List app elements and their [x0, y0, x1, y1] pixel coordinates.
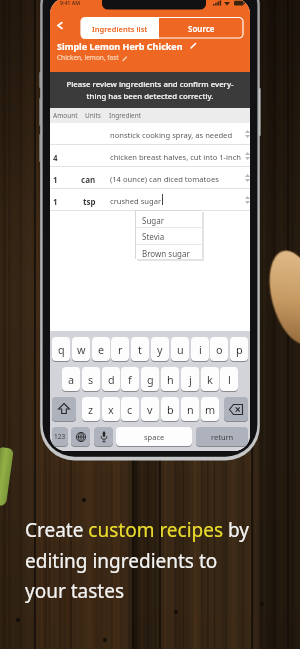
button[interactable]: c	[121, 397, 139, 421]
staticText: crushed sugar	[110, 196, 242, 206]
button[interactable]: g	[141, 367, 159, 391]
button[interactable]: q	[52, 337, 70, 361]
staticText: q	[58, 342, 65, 357]
button[interactable]: nonstick cooking spray, as needed	[50, 123, 250, 145]
staticText: o	[216, 342, 223, 357]
staticText: a	[68, 372, 75, 387]
staticText: Amount	[53, 111, 78, 120]
staticText: g	[147, 372, 154, 387]
staticText: Chicken, lemon, fast	[57, 53, 119, 62]
staticText: v	[147, 402, 153, 417]
staticText: e	[98, 342, 105, 357]
button[interactable]	[94, 427, 113, 446]
staticText: (14 ounce) can diced tomatoes	[110, 174, 242, 184]
button[interactable]: f	[121, 367, 139, 391]
staticText: f	[128, 372, 132, 387]
staticText: 123	[54, 432, 66, 441]
button[interactable]: x	[102, 397, 120, 421]
button[interactable]: r	[111, 337, 129, 361]
button[interactable]: v	[141, 397, 159, 421]
staticText: j	[189, 372, 192, 387]
staticText: 1	[53, 174, 58, 185]
button[interactable]	[52, 397, 76, 421]
staticText: can	[81, 174, 96, 185]
button[interactable]: s	[82, 367, 100, 391]
staticText: r	[118, 342, 123, 357]
staticText: z	[88, 402, 94, 417]
button[interactable]: Brown sugar	[142, 248, 190, 259]
button[interactable]: b	[161, 397, 179, 421]
button[interactable]: Ingredients list	[81, 18, 159, 39]
staticText: l	[228, 372, 231, 387]
button[interactable]: Stevia	[142, 231, 165, 242]
staticText: s	[88, 372, 94, 387]
button[interactable]: a	[62, 367, 80, 391]
button[interactable]: l	[220, 367, 238, 391]
staticText: k	[207, 372, 213, 387]
button[interactable]: Source	[159, 18, 243, 39]
staticText: nonstick cooking spray, as needed	[110, 130, 242, 140]
staticText: Create custom recipes by editing ingredi…	[25, 517, 250, 603]
button[interactable]: i	[191, 337, 209, 361]
button[interactable]: o	[210, 337, 228, 361]
staticText: Units	[85, 111, 101, 120]
staticText: w	[77, 342, 86, 357]
button[interactable]: 1	[50, 167, 250, 189]
button[interactable]: return	[196, 427, 248, 446]
button[interactable]: y	[151, 337, 169, 361]
button[interactable]: m	[201, 397, 219, 421]
staticText: 4	[53, 152, 58, 163]
button[interactable]: space	[116, 427, 192, 446]
staticText: tsp	[83, 196, 96, 207]
button[interactable]: 1	[50, 189, 250, 211]
button[interactable]: z	[82, 397, 100, 421]
staticText: Ingredients list	[92, 24, 148, 34]
button[interactable]: d	[102, 367, 120, 391]
staticText: d	[108, 372, 115, 387]
staticText: space	[144, 432, 165, 442]
staticText: c	[127, 402, 133, 417]
button[interactable]	[224, 397, 248, 421]
staticText: y	[157, 342, 163, 357]
staticText: m	[205, 402, 216, 417]
staticText: Ingredient	[109, 111, 142, 120]
button[interactable]: j	[181, 367, 199, 391]
button[interactable]	[50, 0, 250, 72]
staticText: h	[167, 372, 174, 387]
button[interactable]: p	[230, 337, 248, 361]
button[interactable]: t	[131, 337, 149, 361]
staticText: return	[211, 432, 234, 442]
staticText: chicken breast halves, cut into 1-inch s…	[110, 152, 242, 162]
button[interactable]	[71, 427, 90, 446]
button[interactable]: e	[92, 337, 110, 361]
button[interactable]: 123	[52, 427, 68, 446]
staticText: t	[138, 342, 142, 357]
staticText: Source	[188, 23, 215, 34]
staticText: u	[177, 342, 184, 357]
staticText: 9:41 AM	[60, 0, 80, 6]
staticText: n	[187, 402, 194, 417]
staticText: b	[167, 402, 174, 417]
button[interactable]: u	[171, 337, 189, 361]
staticText: Simple Lemon Herb Chicken	[57, 40, 183, 52]
staticText: 1	[53, 196, 58, 207]
staticText: x	[108, 402, 114, 417]
button[interactable]: k	[201, 367, 219, 391]
staticText: i	[199, 342, 202, 357]
staticText: Please review ingredients and confirm ev…	[66, 79, 234, 101]
button[interactable]: Sugar	[142, 215, 165, 226]
staticText: p	[236, 342, 243, 357]
button[interactable]: w	[72, 337, 90, 361]
button[interactable]: 4	[50, 145, 250, 167]
button[interactable]: n	[181, 397, 199, 421]
button[interactable]: h	[161, 367, 179, 391]
